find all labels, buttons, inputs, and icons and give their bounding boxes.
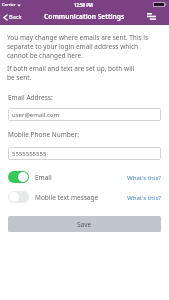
staticText: 5555555555 xyxy=(12,150,47,158)
staticText: 12:58 PM xyxy=(74,2,93,8)
staticText: Email xyxy=(35,173,52,182)
button[interactable]: Email xyxy=(8,171,29,183)
staticText: Communication Settings xyxy=(44,12,125,21)
button[interactable]: 5555555555 xyxy=(8,147,161,160)
button[interactable]: Back xyxy=(0,9,26,25)
button[interactable]: Menu xyxy=(141,9,162,25)
staticText: user@email.com xyxy=(12,111,60,119)
button[interactable]: Save xyxy=(8,216,161,232)
staticText: Carrier xyxy=(2,2,16,8)
staticText: Save xyxy=(77,220,92,229)
staticText: You may change where emails are sent. Th… xyxy=(7,33,149,60)
staticText: Email Address: xyxy=(8,93,53,102)
staticText: Mobile Phone Number: xyxy=(8,130,79,139)
button[interactable]: Mobile text message xyxy=(8,191,29,203)
button[interactable]: What's this? xyxy=(127,173,161,181)
button[interactable]: What's this? xyxy=(127,193,161,201)
staticText: If both email and text are set up, both … xyxy=(7,64,135,82)
button[interactable]: user@email.com xyxy=(8,108,161,121)
staticText: Back xyxy=(9,13,22,21)
staticText: Mobile text message xyxy=(35,193,99,202)
